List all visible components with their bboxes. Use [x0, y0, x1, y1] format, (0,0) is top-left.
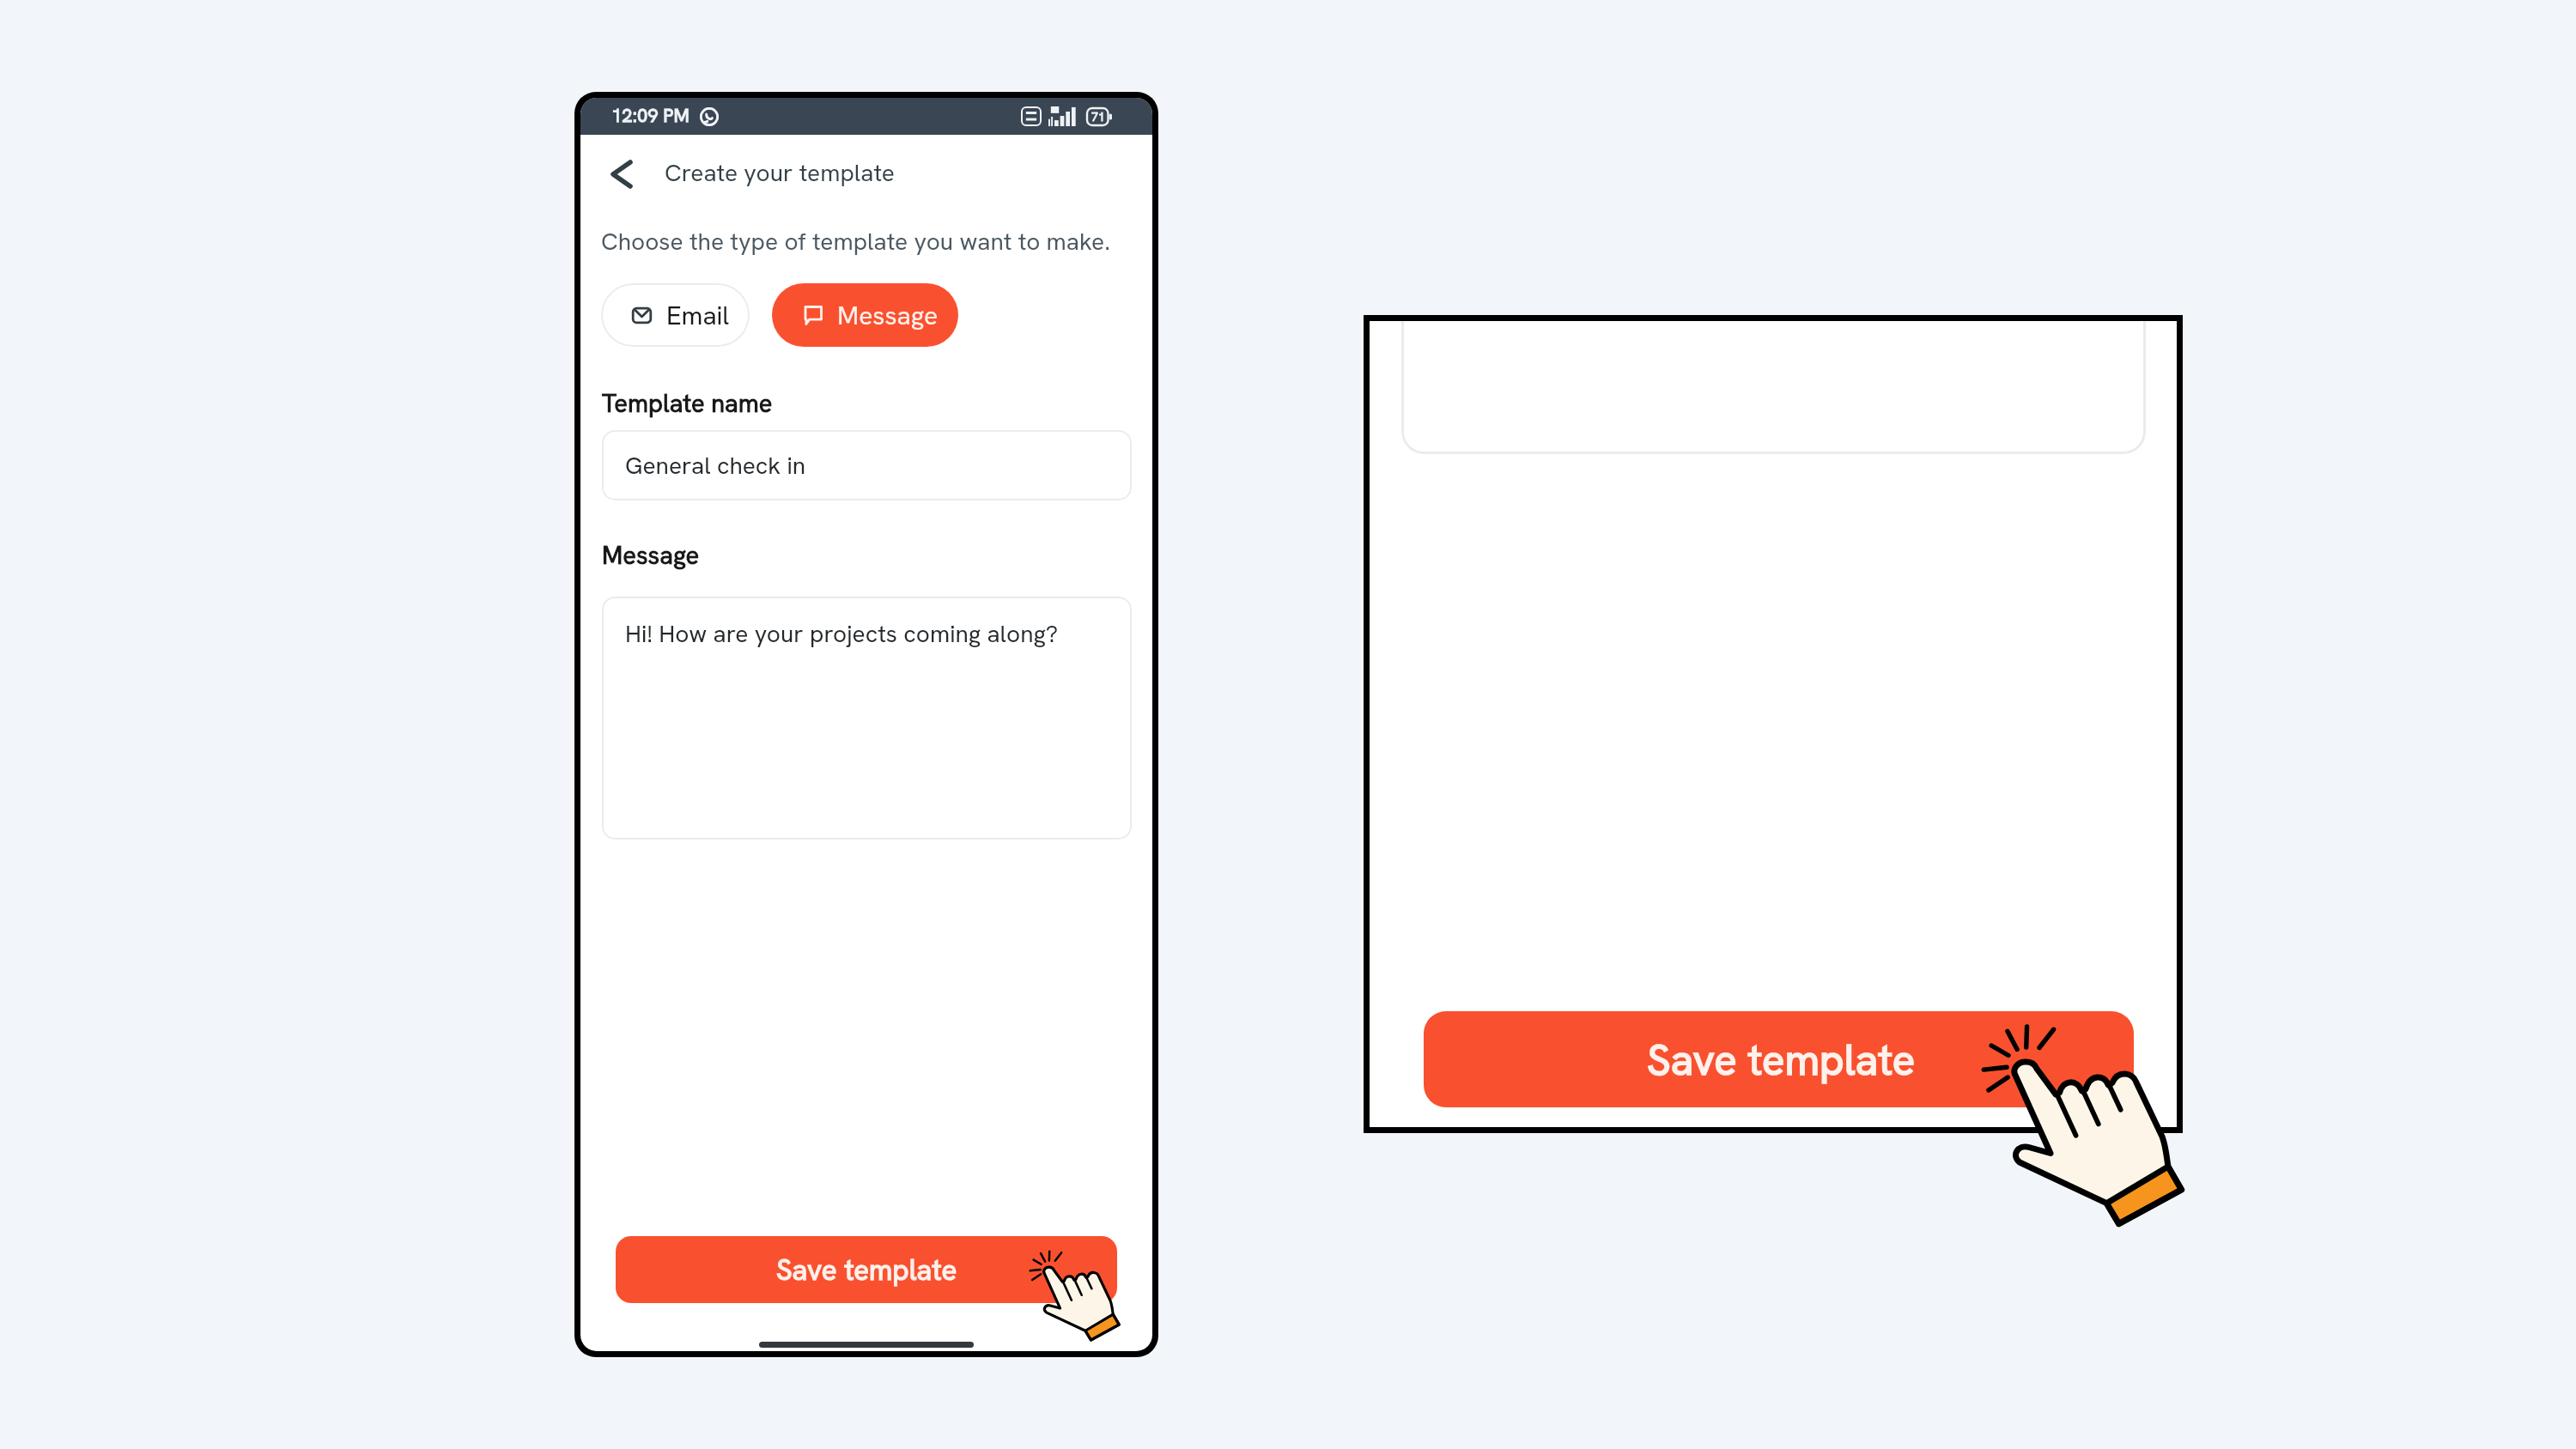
staticText: 12:09 PM — [611, 103, 690, 128]
button[interactable]: Hi! How are your projects coming along? — [602, 597, 1132, 840]
staticText: Template name — [602, 387, 773, 420]
staticText: Message — [837, 299, 939, 332]
staticText: Save template — [776, 1252, 957, 1288]
button[interactable]: Message — [772, 283, 958, 347]
button[interactable]: General check in — [602, 430, 1132, 500]
button[interactable]: Back — [594, 147, 649, 202]
staticText: Create your template — [665, 157, 895, 188]
staticText: Choose the type of template you want to … — [601, 226, 1110, 257]
staticText: Message — [602, 539, 700, 572]
staticText: Email — [666, 299, 730, 332]
staticText: Save template — [1647, 1033, 1916, 1088]
staticText: General check in — [625, 450, 806, 481]
button[interactable]: Save template — [616, 1236, 1117, 1303]
staticText: 71 — [1091, 109, 1105, 124]
button[interactable]: Email — [601, 283, 750, 347]
staticText: Hi! How are your projects coming along? — [625, 618, 1059, 649]
button[interactable]: Save template — [1424, 1011, 2134, 1107]
